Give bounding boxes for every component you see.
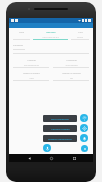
button[interactable]: Identifier: [33, 31, 68, 40]
staticText: Type: [19, 31, 24, 34]
button[interactable]: Voice input: [43, 144, 51, 152]
button[interactable]: Disable notifications: [43, 135, 77, 142]
staticText: 192.168.43.84: [42, 35, 59, 38]
button[interactable]: Back: [26, 155, 32, 161]
button[interactable]: Test connection: [80, 114, 88, 122]
staticText: Port: [78, 31, 83, 34]
staticText: Radius in meters: [23, 72, 40, 75]
button[interactable]: Port: [71, 31, 89, 40]
button[interactable]: Disable notifications: [80, 134, 88, 142]
staticText: Longitude: [66, 59, 77, 62]
button[interactable]: Current location: [43, 125, 77, 132]
button[interactable]: Test connection: [43, 115, 77, 122]
button[interactable]: Home: [48, 155, 54, 161]
button[interactable]: Current location: [80, 124, 88, 132]
staticText: Latitude: [27, 59, 36, 62]
staticText: 30: [70, 76, 73, 79]
staticText: Password: [13, 44, 23, 47]
button[interactable]: Type: [13, 31, 30, 40]
staticText: Disable notifications: [48, 137, 72, 140]
staticText: Test connection: [51, 117, 69, 120]
staticText: 100: [29, 76, 34, 79]
staticText: Interval in seconds: [62, 72, 81, 75]
staticText: 4.9103005: [65, 63, 78, 66]
staticText: 8123: [77, 35, 83, 38]
button[interactable]: Recent apps: [71, 155, 77, 161]
staticText: ••••••••••••: [13, 48, 25, 52]
staticText: Current location: [51, 127, 70, 130]
staticText: Identifier: [46, 31, 56, 34]
button[interactable]: Close: [81, 145, 88, 152]
staticText: 52.36995044: [24, 63, 39, 66]
